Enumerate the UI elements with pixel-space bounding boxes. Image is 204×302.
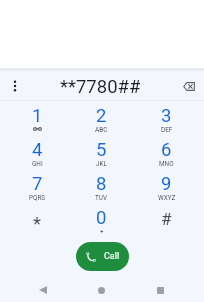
staticText: GHI xyxy=(32,160,43,168)
staticText: 4 xyxy=(32,139,43,161)
button[interactable]: 4 xyxy=(5,139,69,173)
button[interactable]: * xyxy=(5,207,69,241)
button[interactable]: Backspace xyxy=(176,68,204,100)
button[interactable]: 6 xyxy=(134,139,199,173)
staticText: # xyxy=(161,209,172,229)
staticText: 0 xyxy=(96,207,107,229)
button[interactable]: Recent apps xyxy=(131,278,190,302)
button[interactable]: 9 xyxy=(134,173,199,207)
staticText: ABC xyxy=(95,126,108,134)
button[interactable]: # xyxy=(134,207,199,241)
button[interactable]: 7 xyxy=(5,173,69,207)
staticText: 6 xyxy=(161,139,172,161)
button[interactable]: 2 xyxy=(69,105,134,139)
button[interactable]: 8 xyxy=(69,173,134,207)
button[interactable]: 3 xyxy=(134,105,199,139)
staticText: 3 xyxy=(161,105,172,127)
staticText: 5 xyxy=(96,139,107,161)
staticText: 2 xyxy=(96,105,107,127)
button[interactable]: More options xyxy=(0,68,28,100)
staticText: 8 xyxy=(96,173,107,195)
staticText: * xyxy=(33,213,41,235)
staticText: MNO xyxy=(159,160,174,168)
button[interactable]: Back xyxy=(14,278,72,302)
staticText: PQRS xyxy=(29,194,46,202)
button[interactable]: 5 xyxy=(69,139,134,173)
staticText: Call xyxy=(104,251,120,262)
staticText: + xyxy=(100,228,104,236)
staticText: WXYZ xyxy=(158,194,176,202)
staticText: 9 xyxy=(161,173,172,195)
staticText: 7 xyxy=(32,173,43,195)
staticText: TUV xyxy=(95,194,108,202)
staticText: 1 xyxy=(32,105,43,127)
button[interactable]: 0 xyxy=(69,207,134,241)
button[interactable]: Home xyxy=(72,278,131,302)
staticText: **7780## xyxy=(60,76,141,98)
staticText: JKL xyxy=(96,160,107,168)
button[interactable]: Call xyxy=(76,242,129,271)
button[interactable]: 1 xyxy=(5,105,69,139)
staticText: DEF xyxy=(161,126,173,134)
